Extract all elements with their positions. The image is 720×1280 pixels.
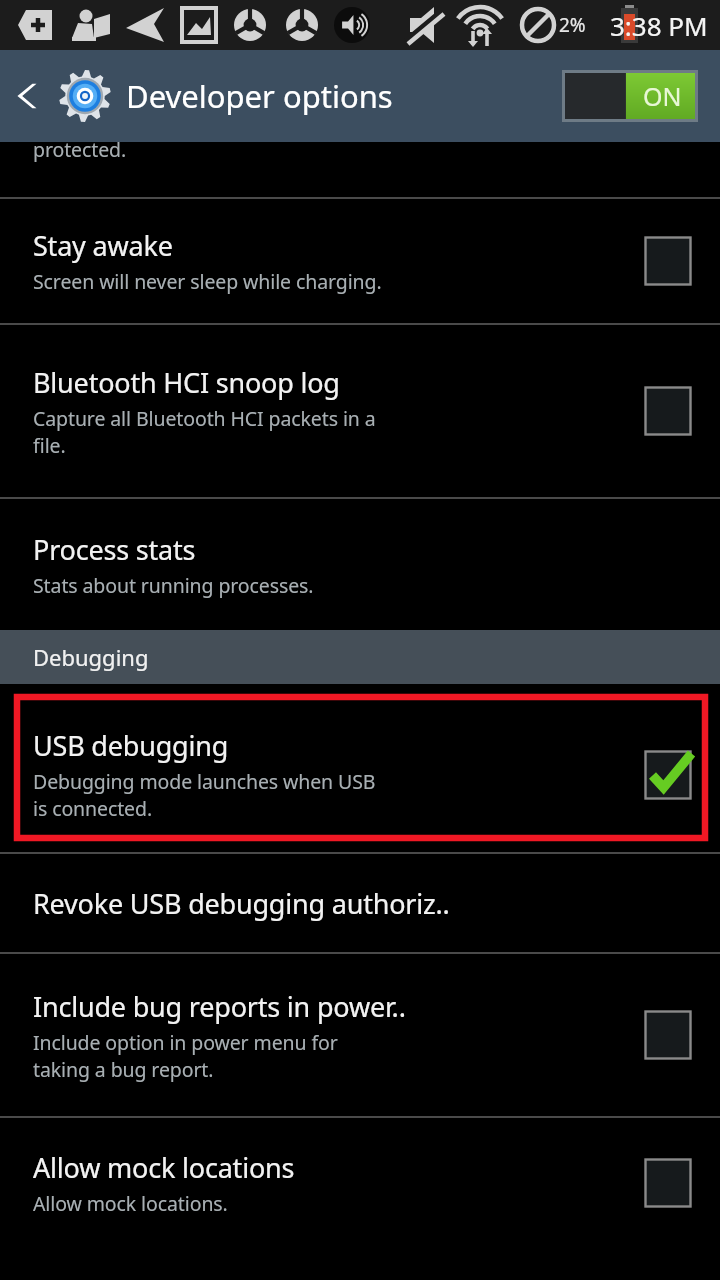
staticText: Screen will never sleep while charging.: [33, 268, 382, 295]
staticText: Revoke USB debugging authoriz..: [33, 885, 450, 922]
staticText: Allow mock locations.: [33, 1190, 228, 1217]
button[interactable]: Revoke USB debugging authoriz..: [0, 854, 720, 952]
staticText: ON: [643, 79, 682, 113]
staticText: Stay awake: [33, 227, 173, 264]
staticText: 2%: [559, 12, 586, 38]
staticText: Bluetooth HCI snoop log: [33, 364, 340, 401]
staticText: Allow mock locations: [33, 1149, 295, 1186]
staticText: Debugging mode launches when USB is conn…: [33, 768, 376, 822]
staticText: 3:38 PM: [610, 8, 708, 43]
button[interactable]: protected.: [0, 142, 720, 197]
staticText: Developer options: [126, 75, 393, 117]
button[interactable]: Back: [0, 50, 58, 142]
button[interactable]: USB debugging: [0, 697, 720, 852]
button[interactable]: Allow mock locations: [0, 1118, 720, 1248]
staticText: Capture all Bluetooth HCI packets in a f…: [33, 405, 376, 459]
button[interactable]: Stay awake: [0, 199, 720, 323]
button[interactable]: Bluetooth HCI snoop log: [0, 325, 720, 497]
staticText: Process stats: [33, 531, 196, 568]
staticText: Stats about running processes.: [33, 572, 314, 599]
button[interactable]: Include bug reports in power..: [0, 954, 720, 1116]
staticText: Include bug reports in power..: [33, 988, 406, 1025]
button[interactable]: Developer options on: [562, 70, 698, 122]
staticText: Debugging: [33, 642, 149, 672]
button[interactable]: Process stats: [0, 499, 720, 630]
staticText: Include option in power menu for taking …: [33, 1029, 338, 1083]
staticText: protected.: [33, 136, 127, 163]
staticText: USB debugging: [33, 727, 229, 764]
